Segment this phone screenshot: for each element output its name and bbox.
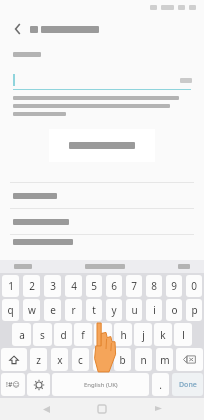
staticText: u [131,303,138,317]
button[interactable]: 7 [126,275,142,297]
staticText: 0 [191,279,197,293]
button[interactable]: 5 [86,275,102,297]
staticText: k [160,328,166,342]
staticText: d [60,328,67,342]
button[interactable]: Recents [148,399,168,419]
button[interactable]: English (UK) [52,373,149,396]
staticText: q [7,303,14,317]
button[interactable]: 4 [65,275,82,297]
staticText: z [36,353,41,367]
staticText: 5 [91,279,97,293]
staticText: 1 [8,279,14,293]
staticText: l [182,328,185,342]
staticText: c [78,353,83,367]
button[interactable]: Shift [1,348,27,371]
staticText: p [191,303,198,317]
button[interactable]: 6 [106,275,122,297]
staticText: x [57,353,63,367]
button[interactable]: Symbols [1,373,25,396]
button[interactable]: x [51,348,68,371]
staticText: a [19,328,25,342]
staticText: i [153,303,156,317]
button[interactable]: Done [172,373,203,396]
button[interactable]: . [152,373,169,396]
button[interactable]: 3 [44,275,61,297]
staticText: 3 [50,279,56,293]
button[interactable]: 0 [186,275,202,297]
button[interactable]: h [114,323,132,346]
staticText: 2 [29,279,35,293]
button[interactable]: j [134,323,152,346]
button[interactable]: y [106,299,122,321]
button[interactable] [0,234,204,249]
staticText: m [160,353,170,367]
button[interactable]: 8 [146,275,162,297]
staticText: English (UK) [84,381,118,389]
button[interactable]: u [126,299,142,321]
staticText: 9 [171,279,177,293]
button[interactable]: Backspace [176,348,203,371]
staticText: g [100,328,107,342]
button[interactable]: d [54,323,72,346]
staticText: w [28,303,36,317]
staticText: 7 [131,279,137,293]
button[interactable]: n [135,348,152,371]
staticText: e [50,303,56,317]
button[interactable]: Back [36,399,56,419]
button[interactable]: v [93,348,110,371]
staticText: s [40,328,45,342]
button[interactable]: c [72,348,89,371]
button[interactable]: Settings [27,373,50,396]
button[interactable]: f [74,323,92,346]
button[interactable]: m [156,348,173,371]
staticText: f [81,328,85,342]
button[interactable]: e [44,299,61,321]
button[interactable] [14,264,32,269]
staticText: 4 [71,279,77,293]
button[interactable]: k [154,323,172,346]
staticText: . [159,378,162,392]
button[interactable]: i [146,299,162,321]
button[interactable] [0,70,204,90]
button[interactable]: z [30,348,47,371]
button[interactable]: g [94,323,112,346]
button[interactable]: p [186,299,202,321]
button[interactable]: 9 [166,275,182,297]
button[interactable]: b [114,348,131,371]
button[interactable]: o [166,299,182,321]
staticText: r [71,303,76,317]
staticText: 8 [151,279,157,293]
staticText: j [142,328,145,342]
button[interactable]: t [86,299,102,321]
button[interactable] [0,208,204,234]
button[interactable]: 2 [23,275,40,297]
staticText: t [92,303,96,317]
staticText: h [120,328,127,342]
button[interactable]: 1 [2,275,19,297]
staticText: !#☺ [6,380,20,390]
staticText: o [171,303,178,317]
button[interactable] [178,264,190,269]
staticText: n [140,353,147,367]
button[interactable] [0,182,204,208]
button[interactable]: w [23,299,40,321]
button[interactable]: s [33,323,52,346]
staticText: 6 [111,279,117,293]
staticText: Done [179,380,197,390]
button[interactable] [49,129,155,162]
button[interactable]: Home [92,399,112,419]
button[interactable]: a [12,323,31,346]
button[interactable]: Back [8,19,28,39]
button[interactable]: q [2,299,19,321]
button[interactable]: l [174,323,192,346]
staticText: b [119,353,126,367]
button[interactable]: r [65,299,82,321]
staticText: y [111,303,117,317]
